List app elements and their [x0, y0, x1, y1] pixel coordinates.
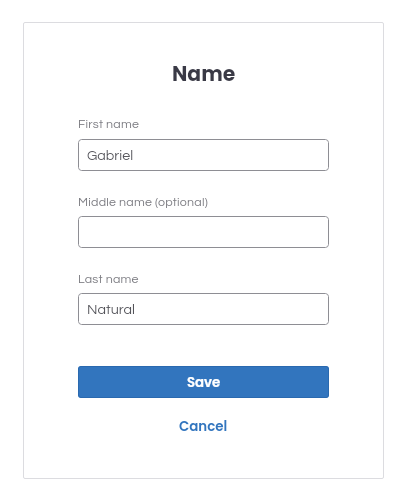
button[interactable]: Cancel	[169, 411, 238, 442]
button[interactable]: First name	[78, 139, 329, 171]
button[interactable]: Middle name (optional)	[78, 216, 329, 248]
staticText: Save	[187, 373, 221, 392]
staticText: Middle name (optional)	[78, 196, 208, 209]
staticText: First name	[78, 118, 140, 131]
staticText: Gabriel	[87, 148, 134, 163]
staticText: Name	[172, 60, 236, 89]
button[interactable]: Save	[78, 366, 329, 398]
staticText: Natural	[87, 302, 135, 317]
button[interactable]: Last name	[78, 293, 329, 325]
staticText: Last name	[78, 273, 139, 286]
staticText: Cancel	[179, 417, 228, 436]
